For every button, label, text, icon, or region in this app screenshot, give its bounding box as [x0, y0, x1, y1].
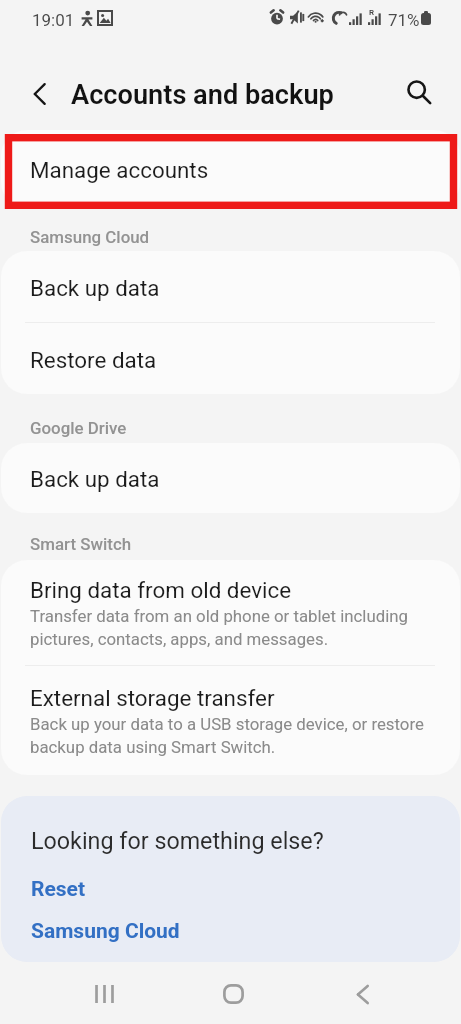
staticText: Samsung Cloud — [30, 227, 150, 247]
staticText: Samsung Cloud — [31, 919, 180, 944]
staticText: Accounts and backup — [71, 79, 334, 111]
staticText: 71% — [388, 10, 420, 30]
button[interactable]: Restore data — [1, 323, 460, 394]
staticText: Bring data from old device — [30, 577, 292, 603]
staticText: R — [369, 8, 375, 17]
button[interactable]: Bring data from old device — [1, 560, 460, 665]
staticText: Reset — [31, 877, 86, 902]
staticText: Restore data — [30, 347, 157, 373]
button[interactable]: Samsung Cloud — [1, 916, 460, 947]
staticText: Back up data — [30, 275, 160, 301]
staticText: Smart Switch — [30, 534, 132, 554]
button[interactable]: Search — [400, 73, 438, 111]
staticText: Google Drive — [30, 418, 127, 438]
button[interactable]: Home — [205, 966, 261, 1022]
staticText: Transfer data from an old phone or table… — [30, 606, 434, 649]
button[interactable]: Navigate up — [21, 75, 59, 113]
staticText: Back up data — [30, 466, 160, 492]
staticText: External storage transfer — [30, 685, 275, 711]
button[interactable]: External storage transfer — [1, 666, 460, 775]
staticText: Manage accounts — [30, 157, 209, 183]
staticText: 19:01 — [32, 10, 75, 30]
button[interactable]: Back up data — [1, 251, 460, 322]
button[interactable]: Recent apps — [76, 966, 132, 1022]
button[interactable]: Manage accounts — [1, 130, 460, 208]
staticText: Back up your data to a USB storage devic… — [30, 714, 434, 757]
button[interactable]: Back — [334, 966, 390, 1022]
button[interactable]: Back up data — [1, 443, 460, 513]
button[interactable]: Reset — [1, 874, 460, 905]
staticText: Looking for something else? — [31, 827, 324, 854]
